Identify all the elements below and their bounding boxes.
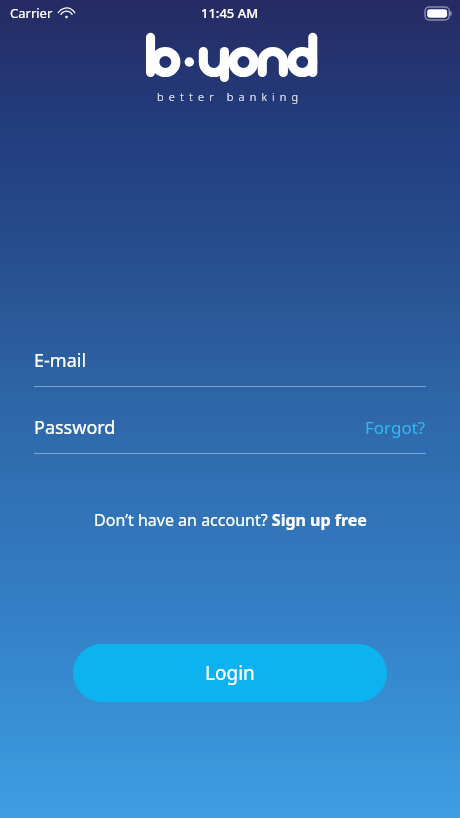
staticText: Carrier <box>10 4 53 22</box>
button[interactable]: E-mail <box>34 348 426 387</box>
staticText: Don’t have an account? Sign up free <box>94 509 367 531</box>
button[interactable]: Forgot? <box>357 414 426 441</box>
button[interactable]: Don’t have an account? Sign up free <box>84 504 377 536</box>
button[interactable]: Login <box>73 644 387 702</box>
staticText: better banking <box>157 89 304 104</box>
button[interactable]: Password <box>34 415 357 440</box>
staticText: Password <box>34 415 116 440</box>
staticText: 11:45 AM <box>201 4 259 22</box>
staticText: Forgot? <box>365 416 426 439</box>
other: b.yond logo <box>144 30 316 82</box>
staticText: Login <box>205 660 255 686</box>
staticText: E-mail <box>34 348 87 373</box>
